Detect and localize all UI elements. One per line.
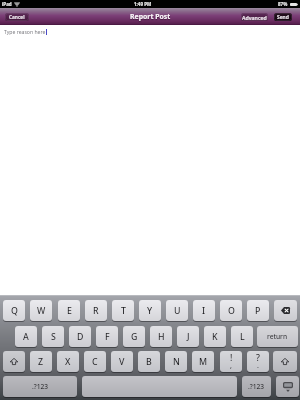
button[interactable]: .?123	[3, 376, 77, 397]
staticText: .	[257, 361, 259, 371]
staticText: E	[67, 305, 72, 317]
button[interactable]: F	[96, 326, 118, 347]
staticText: Q	[11, 305, 18, 317]
staticText: Z	[38, 356, 44, 368]
button[interactable]: !	[220, 351, 242, 372]
staticText: L	[240, 331, 245, 343]
staticText: return	[267, 332, 288, 341]
staticText: A	[23, 331, 29, 343]
staticText: ,	[230, 361, 232, 371]
staticText: G	[131, 331, 138, 343]
button[interactable]: P	[247, 300, 269, 321]
staticText: F	[105, 331, 110, 343]
staticText: H	[158, 331, 165, 343]
staticText: W	[37, 305, 46, 317]
staticText: !	[230, 352, 233, 364]
staticText: .?123	[32, 382, 49, 391]
staticText: Y	[147, 305, 153, 317]
staticText: 1:49 PM	[134, 1, 152, 7]
button[interactable]: S	[42, 326, 64, 347]
staticText: 87%	[278, 1, 288, 7]
button[interactable]: T	[112, 300, 134, 321]
button[interactable]: .?123	[242, 376, 271, 397]
button[interactable]: Shift	[273, 351, 297, 372]
staticText: Report Post	[130, 12, 171, 21]
button[interactable]: I	[193, 300, 215, 321]
button[interactable]: Shift	[3, 351, 25, 372]
staticText: Advanced	[242, 14, 267, 21]
staticText: T	[121, 305, 126, 317]
staticText: V	[119, 356, 125, 368]
staticText: J	[187, 331, 190, 343]
button[interactable]: Backspace	[274, 300, 297, 321]
button[interactable]: ?	[247, 351, 269, 372]
staticText: R	[93, 305, 99, 317]
button[interactable]: K	[204, 326, 226, 347]
button[interactable]: E	[58, 300, 80, 321]
staticText: D	[77, 331, 84, 343]
staticText: iPad	[2, 1, 12, 7]
button[interactable]: D	[69, 326, 91, 347]
button[interactable]: R	[85, 300, 107, 321]
button[interactable]: Z	[30, 351, 52, 372]
button[interactable]: G	[123, 326, 145, 347]
button[interactable]: Cancel	[5, 13, 29, 21]
staticText: P	[255, 305, 261, 317]
button[interactable]: return	[257, 326, 298, 347]
button[interactable]: M	[192, 351, 214, 372]
button[interactable]: X	[57, 351, 79, 372]
button[interactable]: C	[84, 351, 106, 372]
staticText: ?	[256, 352, 260, 364]
staticText: Send	[277, 14, 289, 21]
button[interactable]: Send	[274, 13, 292, 21]
staticText: M	[199, 356, 208, 368]
button[interactable]: V	[111, 351, 133, 372]
staticText: U	[174, 305, 181, 317]
staticText: Cancel	[9, 14, 25, 21]
staticText: B	[146, 356, 152, 368]
button[interactable]: Hide keyboard	[276, 376, 299, 397]
staticText: .?123	[248, 382, 265, 391]
button[interactable]: Advanced	[241, 13, 268, 21]
button[interactable]: O	[220, 300, 242, 321]
button[interactable]: H	[150, 326, 172, 347]
staticText: I	[202, 305, 206, 317]
button[interactable]: Space	[82, 376, 237, 397]
button[interactable]: Q	[3, 300, 25, 321]
staticText: Type reason here	[4, 29, 46, 35]
staticText: S	[51, 331, 56, 343]
button[interactable]: Y	[139, 300, 161, 321]
button[interactable]: U	[166, 300, 188, 321]
staticText: K	[212, 331, 218, 343]
staticText: N	[173, 356, 180, 368]
staticText: X	[65, 356, 71, 368]
button[interactable]: Type reason here	[4, 29, 47, 35]
staticText: O	[228, 305, 235, 317]
button[interactable]: A	[15, 326, 37, 347]
staticText: C	[92, 356, 98, 368]
button[interactable]: J	[177, 326, 199, 347]
button[interactable]: W	[30, 300, 52, 321]
button[interactable]: B	[138, 351, 160, 372]
button[interactable]: N	[165, 351, 187, 372]
button[interactable]: L	[231, 326, 253, 347]
